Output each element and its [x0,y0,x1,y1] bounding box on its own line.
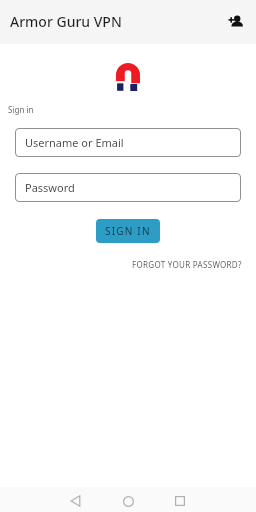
staticText: Password [25,180,75,195]
button[interactable] [50,490,102,512]
button[interactable]: FORGOT YOUR PASSWORD? [132,259,242,270]
button[interactable] [102,490,154,512]
staticText: Sign in [8,104,34,115]
staticText: FORGOT YOUR PASSWORD? [132,259,242,270]
button[interactable]: Username or Email [15,128,241,157]
staticText: Armor Guru VPN [10,12,122,31]
staticText: Username or Email [25,135,124,150]
button[interactable] [154,490,206,512]
button[interactable]: SIGN IN [96,219,160,243]
staticText: SIGN IN [105,224,151,238]
button[interactable]: Password [15,173,241,202]
button[interactable] [223,8,251,36]
